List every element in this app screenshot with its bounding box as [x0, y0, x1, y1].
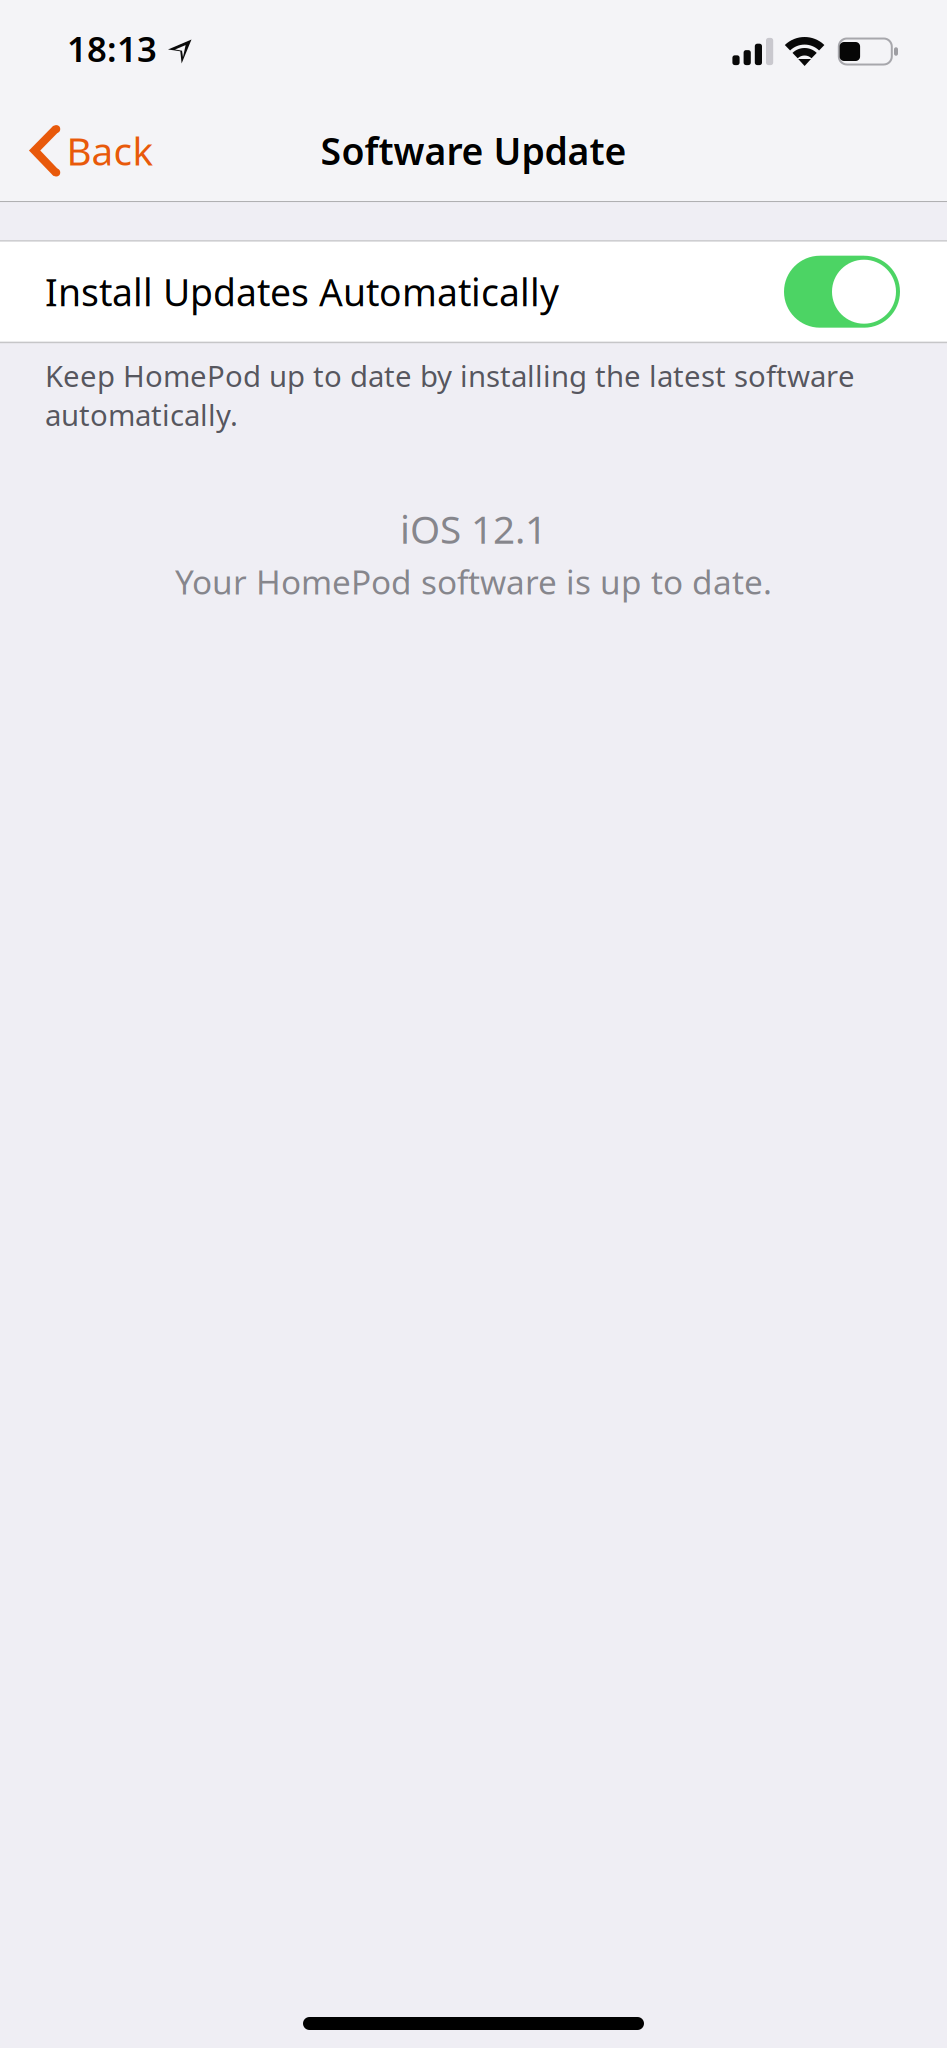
- staticText: Software Update: [320, 126, 626, 175]
- button[interactable]: Install Updates Automatically: [0, 242, 947, 342]
- staticText: Keep HomePod up to date by installing th…: [45, 356, 855, 434]
- staticText: Your HomePod software is up to date.: [175, 559, 772, 604]
- staticText: 18:13: [67, 25, 157, 71]
- button[interactable]: Back: [0, 98, 177, 202]
- staticText: iOS 12.1: [400, 503, 547, 554]
- staticText: Install Updates Automatically: [45, 267, 559, 316]
- staticText: Back: [66, 125, 153, 176]
